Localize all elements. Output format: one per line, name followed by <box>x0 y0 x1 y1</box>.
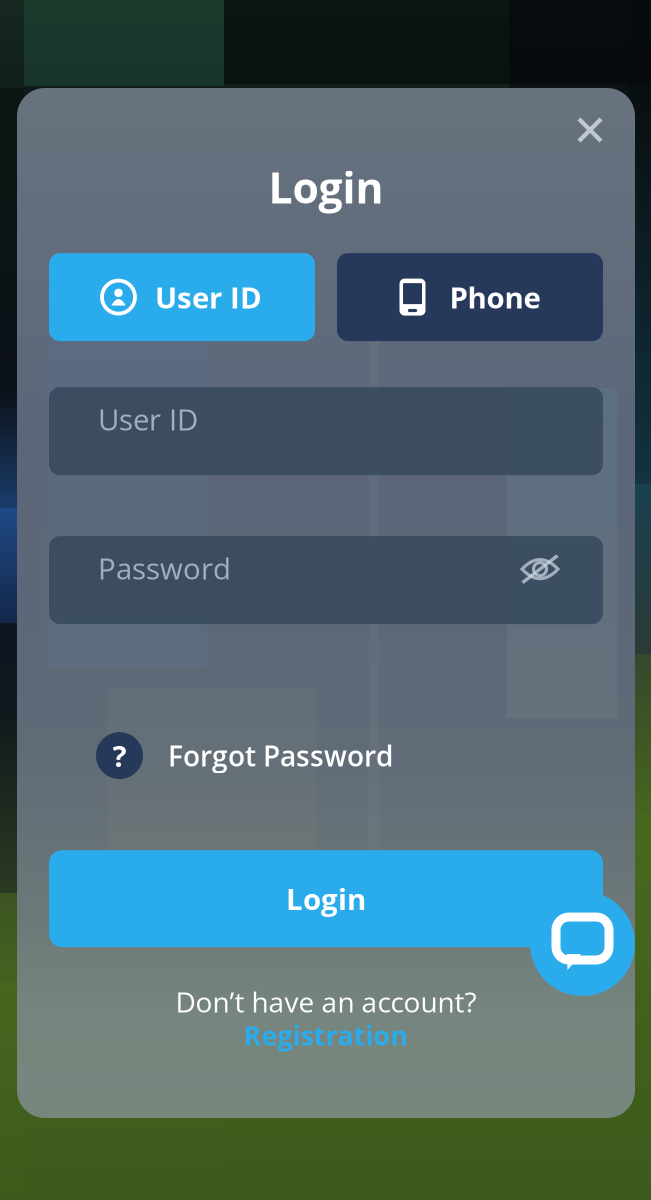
staticText: ? <box>112 736 126 775</box>
button[interactable]: Registration <box>243 1018 408 1052</box>
staticText: Login <box>286 879 366 918</box>
button[interactable]: Login <box>49 850 603 947</box>
staticText: User ID <box>155 277 262 317</box>
staticText: Login <box>268 158 383 216</box>
staticText: Phone <box>449 277 540 317</box>
button[interactable]: Chat support <box>530 891 635 996</box>
button[interactable]: User ID <box>49 253 315 341</box>
staticText: Don’t have an account? <box>175 982 476 1021</box>
staticText: Password <box>98 548 231 588</box>
button[interactable]: ? <box>96 732 393 779</box>
staticText: Forgot Password <box>168 736 393 775</box>
staticText: User ID <box>98 399 198 439</box>
button[interactable]: Show password <box>509 538 571 622</box>
staticText: Registration <box>243 1017 408 1053</box>
button[interactable]: Close <box>568 108 612 152</box>
button[interactable]: Phone <box>337 253 603 341</box>
